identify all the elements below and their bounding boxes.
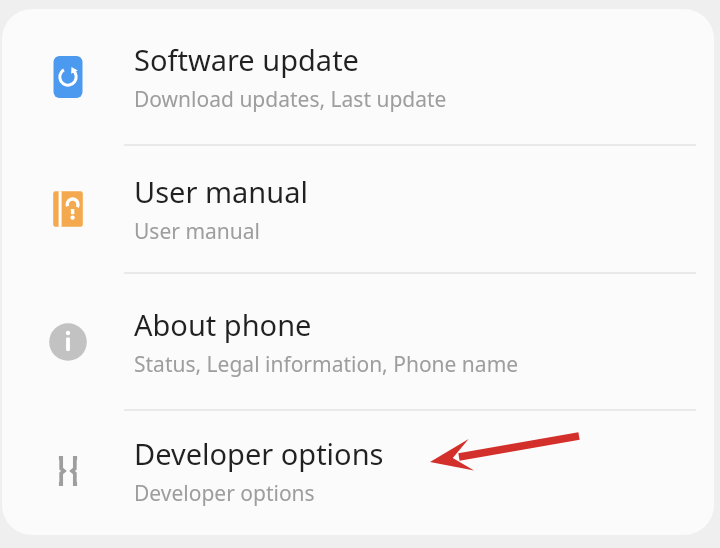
other: Software update [47, 56, 89, 98]
button[interactable]: Developer options [2, 411, 714, 531]
button[interactable]: About phone [2, 274, 714, 409]
other: About phone [48, 322, 88, 362]
button[interactable]: Software update [2, 9, 714, 144]
staticText: User manual [134, 217, 260, 246]
staticText: Download updates, Last update [134, 85, 447, 114]
other: User manual [48, 189, 88, 229]
staticText: User manual [134, 172, 308, 211]
button[interactable]: User manual [2, 146, 714, 272]
staticText: Developer options [134, 479, 315, 508]
staticText: Software update [134, 40, 359, 79]
staticText: Developer options [134, 434, 384, 473]
other: Developer options [46, 449, 90, 493]
staticText: About phone [134, 305, 312, 344]
staticText: Status, Legal information, Phone name [134, 350, 519, 379]
